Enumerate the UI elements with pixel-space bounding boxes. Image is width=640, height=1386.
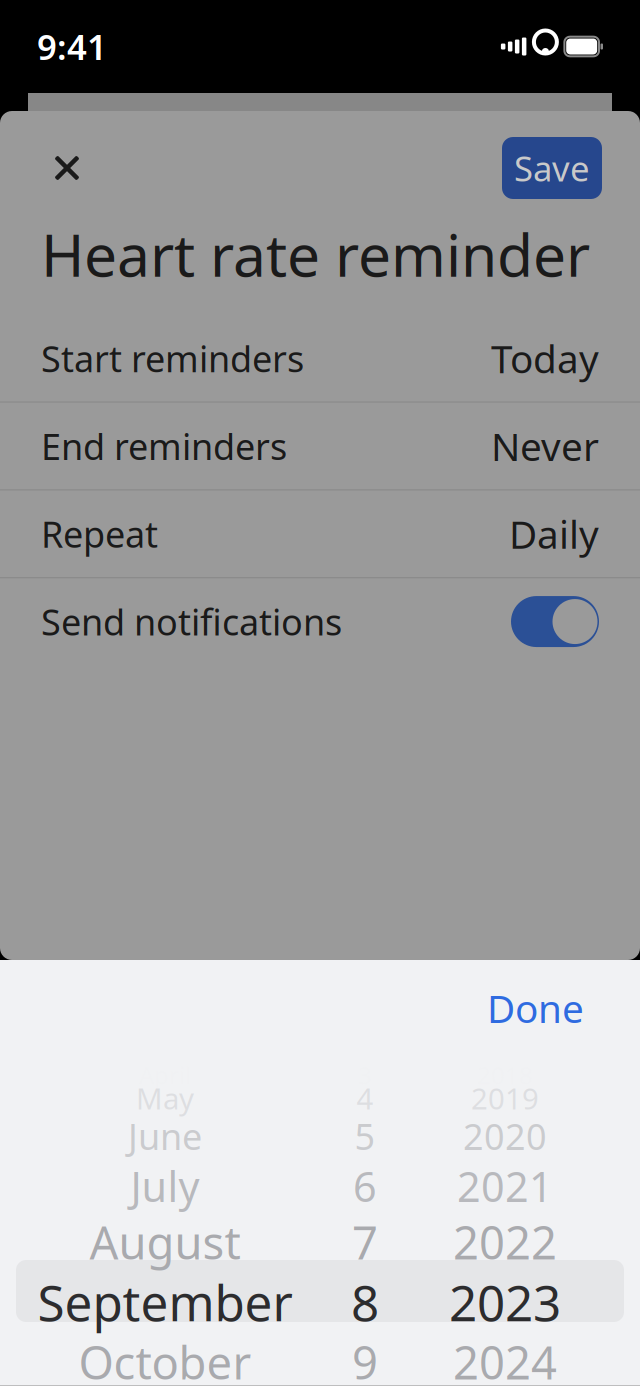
button[interactable]: Done (475, 974, 596, 1042)
staticText: August (89, 1212, 240, 1272)
staticText: 7 (352, 1212, 378, 1272)
staticText: 9 (352, 1332, 378, 1386)
staticText: Save (514, 145, 590, 191)
staticText: Heart rate reminder (41, 215, 590, 293)
staticText: Repeat (41, 510, 158, 558)
staticText: Done (487, 982, 584, 1034)
staticText: 2021 (457, 1159, 553, 1213)
staticText: October (78, 1332, 251, 1386)
staticText: Send notifications (41, 598, 342, 645)
button[interactable]: End reminders (0, 403, 640, 489)
button[interactable]: Repeat (0, 490, 640, 577)
staticText: Daily (509, 508, 599, 559)
staticText: End reminders (41, 422, 287, 470)
staticText: May (136, 1078, 194, 1117)
staticText: 2019 (471, 1078, 539, 1117)
staticText: 9:41 (37, 23, 107, 69)
button[interactable]: Save (502, 137, 602, 199)
staticText: September (37, 1269, 292, 1335)
staticText: 2020 (463, 1112, 547, 1160)
button[interactable]: Send notifications (0, 578, 640, 665)
staticText: 2024 (453, 1332, 557, 1386)
staticText: July (130, 1159, 199, 1213)
staticText: 2022 (453, 1212, 557, 1272)
button[interactable]: Start reminders (0, 315, 640, 401)
staticText: 4 (356, 1078, 373, 1117)
staticText: Never (491, 420, 599, 472)
staticText: 2023 (449, 1269, 561, 1335)
staticText: June (128, 1112, 202, 1160)
button[interactable]: Close (38, 139, 96, 197)
staticText: Today (491, 332, 599, 384)
staticText: 5 (354, 1112, 375, 1160)
staticText: Start reminders (41, 334, 304, 382)
staticText: 6 (353, 1159, 377, 1213)
staticText: 8 (351, 1269, 379, 1335)
